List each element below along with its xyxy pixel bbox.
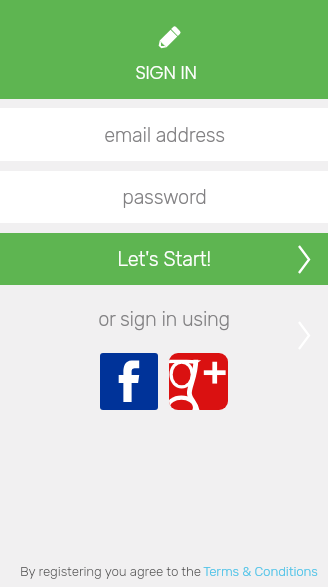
staticText: SIGN IN [135, 60, 197, 85]
staticText: email address [104, 123, 225, 147]
staticText: By registering you agree to the [18, 563, 203, 579]
button[interactable]: password [0, 171, 328, 223]
button[interactable]: Terms & Conditions [203, 563, 318, 579]
button[interactable]: Sign in with Facebook [100, 353, 158, 410]
button[interactable]: Sign in with Google Plus [169, 353, 228, 410]
staticText: or sign in using [98, 307, 230, 331]
button[interactable]: email address [0, 108, 328, 161]
staticText: Terms & Conditions [203, 563, 318, 579]
staticText: Let's Start! [117, 247, 211, 271]
other: Sign in [157, 26, 181, 50]
button[interactable]: Let's Start! [0, 233, 328, 285]
staticText: password [122, 185, 207, 209]
